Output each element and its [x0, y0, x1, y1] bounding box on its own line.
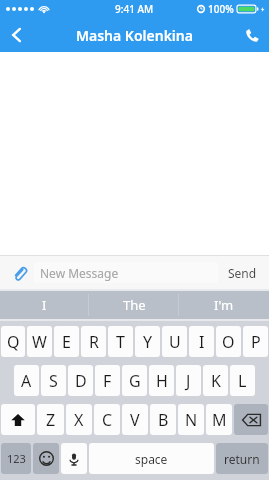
- staticText: P: [251, 331, 261, 353]
- button[interactable]: The: [89, 291, 179, 319]
- staticText: I'm: [214, 296, 234, 314]
- staticText: G: [129, 370, 141, 392]
- button[interactable]: L: [230, 365, 255, 396]
- staticText: W: [32, 331, 47, 353]
- staticText: R: [89, 331, 99, 353]
- button[interactable]: Backspace: [234, 404, 268, 435]
- staticText: return: [224, 451, 260, 467]
- staticText: X: [74, 409, 84, 431]
- button[interactable]: O: [216, 326, 241, 357]
- button[interactable]: F: [95, 365, 120, 396]
- staticText: V: [130, 409, 140, 431]
- button[interactable]: X: [66, 404, 92, 435]
- button[interactable]: N: [178, 404, 204, 435]
- button[interactable]: Attach: [8, 262, 30, 284]
- button[interactable]: K: [203, 365, 228, 396]
- button[interactable]: H: [149, 365, 174, 396]
- staticText: space: [135, 451, 168, 467]
- button[interactable]: U: [162, 326, 187, 357]
- button[interactable]: G: [122, 365, 147, 396]
- button[interactable]: Y: [135, 326, 160, 357]
- staticText: I: [199, 331, 205, 353]
- staticText: B: [158, 409, 169, 431]
- staticText: 123: [7, 451, 26, 466]
- staticText: L: [238, 370, 247, 392]
- staticText: 9:41 AM: [115, 2, 154, 16]
- button[interactable]: V: [122, 404, 148, 435]
- button[interactable]: New Message: [34, 262, 218, 283]
- button[interactable]: I: [0, 291, 89, 319]
- button[interactable]: 123: [1, 443, 31, 474]
- button[interactable]: Call: [235, 18, 269, 52]
- button[interactable]: C: [94, 404, 120, 435]
- button[interactable]: return: [216, 443, 268, 474]
- button[interactable]: M: [206, 404, 232, 435]
- button[interactable]: J: [176, 365, 201, 396]
- staticText: O: [222, 331, 235, 353]
- staticText: Q: [7, 331, 20, 353]
- button[interactable]: B: [150, 404, 176, 435]
- button[interactable]: Shift: [1, 404, 35, 435]
- staticText: Send: [228, 265, 257, 281]
- button[interactable]: T: [108, 326, 133, 357]
- staticText: J: [186, 370, 191, 392]
- staticText: F: [103, 370, 112, 392]
- staticText: New Message: [40, 265, 119, 281]
- staticText: H: [156, 370, 168, 392]
- button[interactable]: Back: [0, 18, 34, 52]
- staticText: Masha Kolenkina: [76, 26, 193, 45]
- staticText: The: [123, 296, 146, 314]
- staticText: I: [42, 296, 47, 314]
- button[interactable]: Send: [224, 261, 261, 285]
- staticText: 100%: [208, 2, 234, 16]
- button[interactable]: Z: [37, 404, 64, 435]
- staticText: U: [169, 331, 181, 353]
- button[interactable]: S: [41, 365, 66, 396]
- staticText: T: [116, 331, 125, 353]
- staticText: M: [212, 409, 227, 431]
- button[interactable]: A: [14, 365, 39, 396]
- button[interactable]: Q: [1, 326, 25, 357]
- button[interactable]: I: [189, 326, 214, 357]
- button[interactable]: I'm: [179, 291, 269, 319]
- button[interactable]: Emoji: [33, 443, 59, 474]
- button[interactable]: W: [27, 326, 52, 357]
- staticText: S: [49, 370, 58, 392]
- staticText: C: [102, 409, 113, 431]
- button[interactable]: E: [54, 326, 79, 357]
- staticText: Z: [46, 409, 56, 431]
- staticText: D: [75, 370, 87, 392]
- button[interactable]: P: [243, 326, 268, 357]
- button[interactable]: D: [68, 365, 93, 396]
- button[interactable]: space: [89, 443, 214, 474]
- staticText: E: [62, 331, 71, 353]
- staticText: Y: [143, 331, 153, 353]
- button[interactable]: Dictate: [61, 443, 87, 474]
- button[interactable]: R: [81, 326, 106, 357]
- staticText: N: [185, 409, 198, 431]
- staticText: A: [21, 370, 32, 392]
- staticText: K: [211, 370, 221, 392]
